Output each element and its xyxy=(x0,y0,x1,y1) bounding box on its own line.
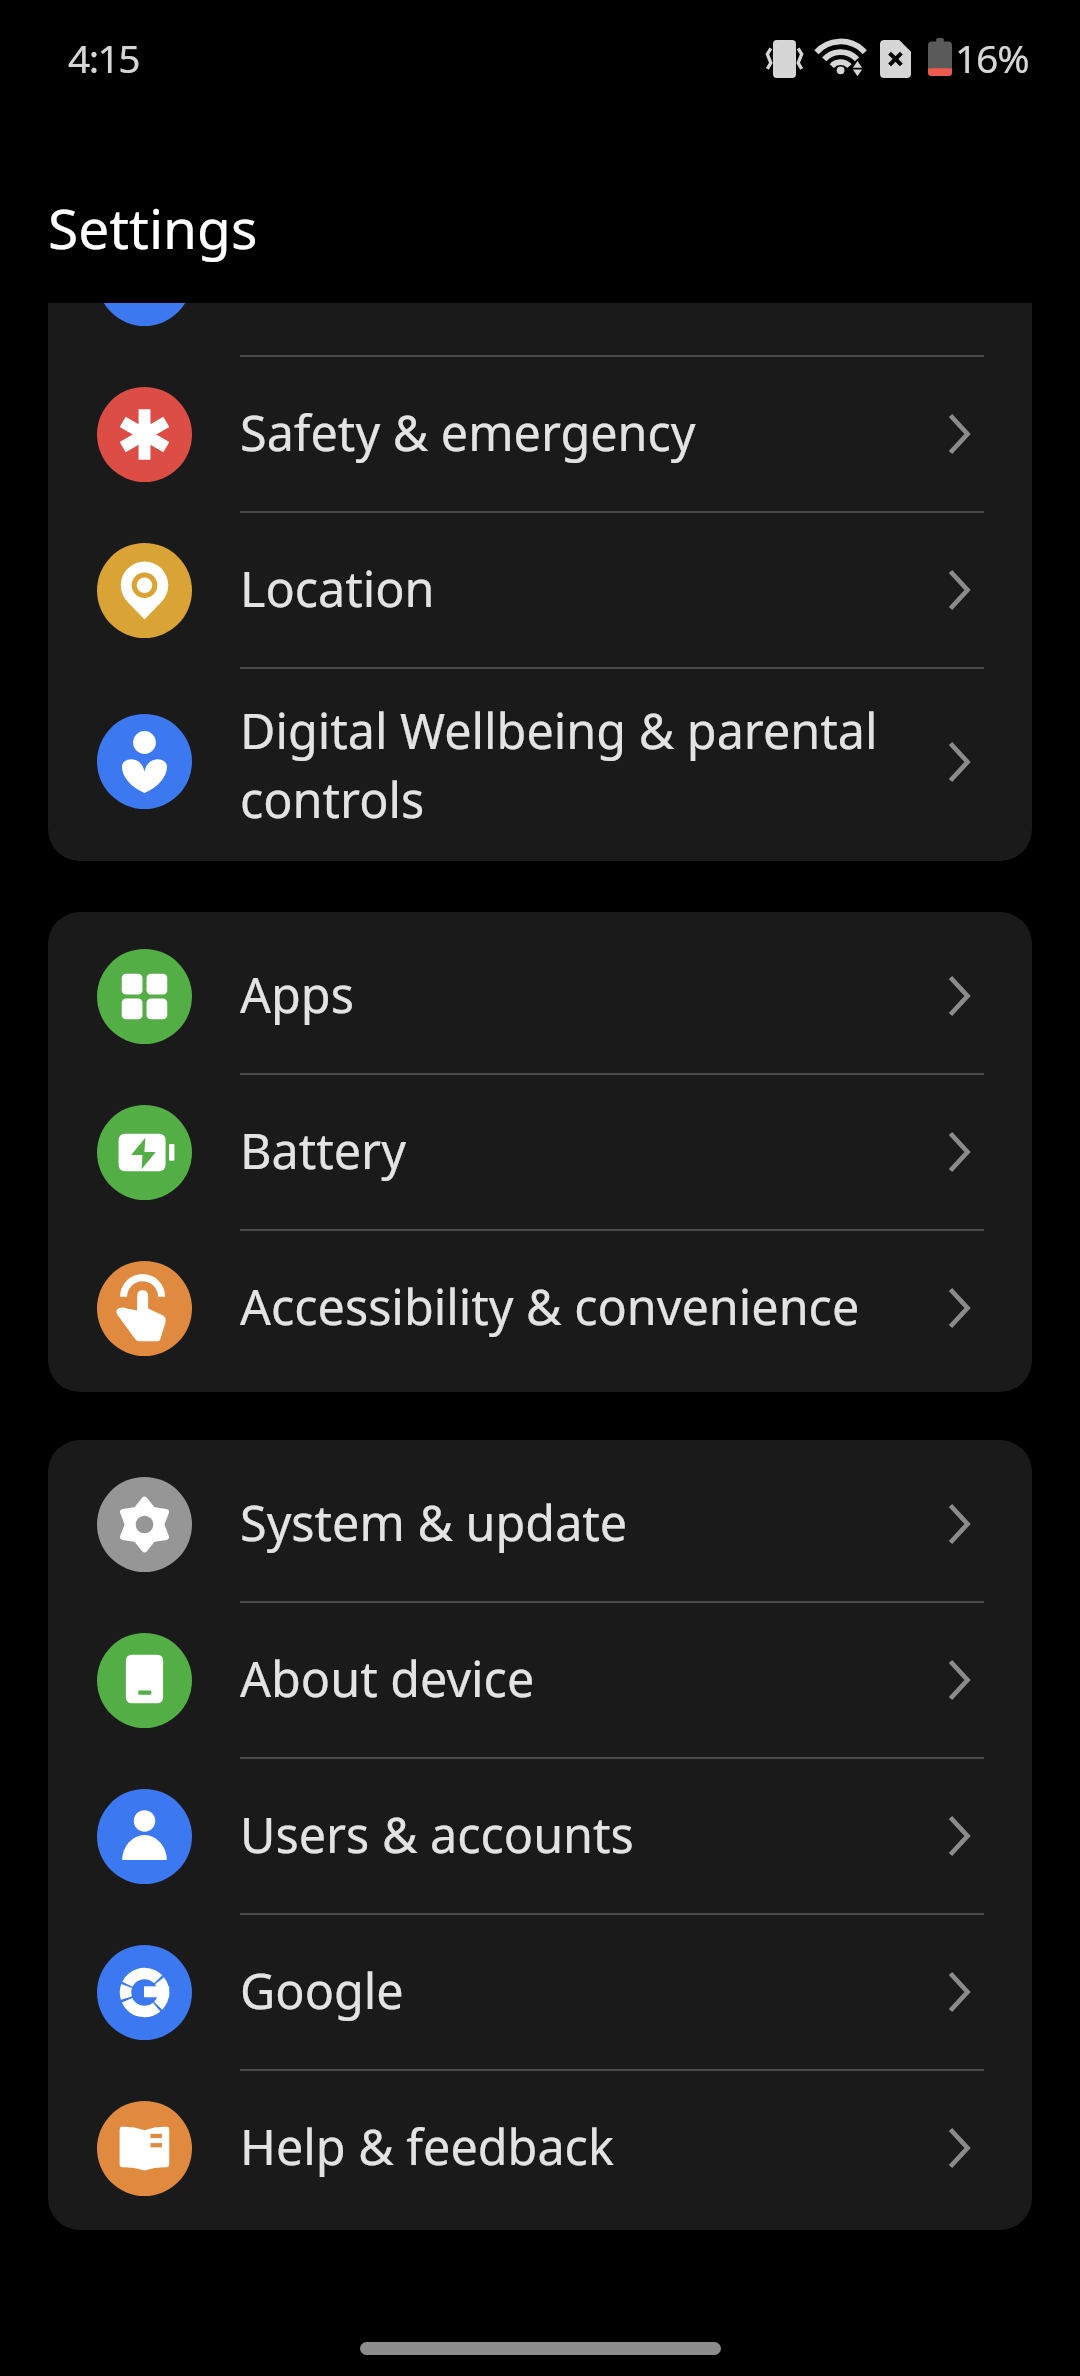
staticText: Google xyxy=(240,1957,404,2023)
staticText: Help & feedback xyxy=(240,2113,614,2179)
staticText: Digital Wellbeing & parental controls xyxy=(240,697,880,832)
staticText: About device xyxy=(240,1645,535,1711)
button[interactable]: Location xyxy=(48,513,1032,667)
button[interactable]: System & update xyxy=(48,1447,1032,1601)
staticText: 4:15 xyxy=(68,31,139,84)
staticText: Safety & emergency xyxy=(240,399,696,465)
other: No SIM card xyxy=(880,40,911,78)
staticText: Location xyxy=(240,555,435,621)
staticText: Battery xyxy=(240,1117,406,1183)
other: Ringer set to vibrate xyxy=(765,40,804,78)
button[interactable]: Help & feedback xyxy=(48,2071,1032,2225)
button[interactable]: Digital Wellbeing & parental controls xyxy=(48,669,1032,854)
staticText: Users & accounts xyxy=(240,1801,634,1867)
button[interactable]: Battery xyxy=(48,1075,1032,1229)
other: Battery 16 percent xyxy=(928,38,952,76)
button[interactable]: Users & accounts xyxy=(48,1759,1032,1913)
button[interactable]: Google xyxy=(48,1915,1032,2069)
staticText: Apps xyxy=(240,961,354,1027)
button[interactable]: Network xyxy=(48,303,1032,355)
button[interactable]: Apps xyxy=(48,919,1032,1073)
staticText: System & update xyxy=(240,1489,628,1555)
staticText: Settings xyxy=(48,190,258,265)
staticText: 16% xyxy=(955,31,1029,84)
button[interactable]: Safety & emergency xyxy=(48,357,1032,511)
staticText: Accessibility & convenience xyxy=(240,1273,860,1339)
other: Wi-Fi connected xyxy=(819,40,864,77)
button[interactable]: About device xyxy=(48,1603,1032,1757)
button[interactable]: Accessibility & convenience xyxy=(48,1231,1032,1385)
